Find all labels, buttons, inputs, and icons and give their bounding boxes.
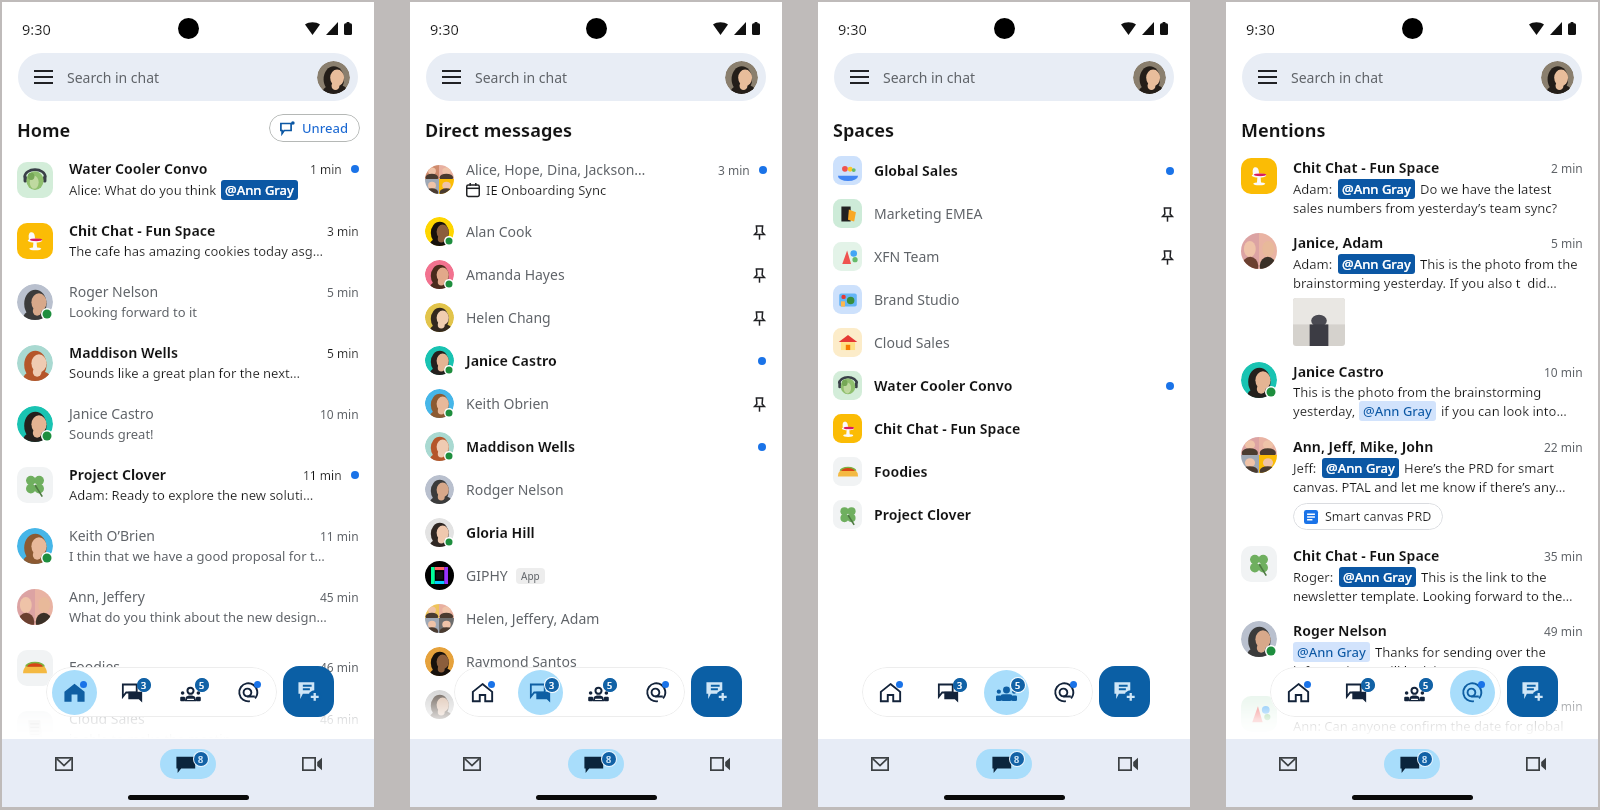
button[interactable]: Chit Chat - Fun Space [818, 407, 1190, 450]
button[interactable]: Meet [658, 739, 782, 789]
button[interactable]: Chat [919, 667, 977, 717]
button[interactable]: Chat [1327, 667, 1385, 717]
button[interactable]: Mail [1226, 739, 1350, 789]
button[interactable]: Smart canvas PRD [1293, 503, 1443, 530]
button[interactable]: Chat [511, 667, 569, 717]
button[interactable]: Janice Castro [410, 339, 782, 382]
button[interactable]: Roger Nelson [2, 271, 374, 332]
button[interactable]: Project Clover [2, 454, 374, 515]
button[interactable]: Mail [2, 739, 126, 789]
button[interactable]: Mentions [1035, 667, 1093, 717]
staticText: XFN Team [1293, 696, 1363, 715]
button[interactable]: New chat [1507, 666, 1558, 717]
button[interactable]: New chat [691, 666, 742, 717]
button[interactable]: Meet [1474, 739, 1598, 789]
button[interactable]: Spaces [977, 667, 1035, 717]
button[interactable]: Search in chat [18, 53, 358, 101]
button[interactable]: Home [1270, 667, 1327, 717]
button[interactable]: Janice Castro [1226, 353, 1598, 428]
button[interactable]: Roger Nelson [1226, 612, 1598, 687]
staticText: Janice, Adam [1293, 233, 1384, 252]
button[interactable]: Search in chat [1242, 53, 1582, 101]
button[interactable]: Rodger Nelson [410, 468, 782, 511]
button[interactable]: GIPHY [410, 554, 782, 597]
button[interactable]: Account [1541, 61, 1574, 94]
button[interactable]: Global Sales [818, 149, 1190, 192]
button[interactable]: Ann, Jeffery [2, 576, 374, 637]
button[interactable]: Project Clover [818, 493, 1190, 536]
button[interactable]: Amanda Hayes [410, 253, 782, 296]
staticText: App [521, 569, 540, 583]
staticText: This is the link to the [1421, 568, 1547, 586]
button[interactable]: Mail [410, 739, 534, 789]
button[interactable]: Spaces [569, 667, 627, 717]
staticText: 3 [1365, 679, 1371, 691]
button[interactable]: Keith Obrien [410, 382, 782, 425]
button[interactable]: Chat [126, 739, 250, 789]
button[interactable]: Keith O’Brien [2, 515, 374, 576]
button[interactable] [410, 683, 782, 726]
button[interactable]: Chit Chat - Fun Space [1226, 149, 1598, 224]
button[interactable]: Meet [1066, 739, 1190, 789]
staticText: I thin that we have a good proposal for … [69, 547, 329, 565]
button[interactable]: Home [454, 667, 511, 717]
button[interactable]: Chit Chat - Fun Space [1226, 537, 1598, 612]
button[interactable]: New chat [1099, 666, 1150, 717]
staticText: Search in chat [67, 68, 160, 87]
button[interactable]: Mail [818, 739, 942, 789]
button[interactable]: Search in chat [834, 53, 1174, 101]
button[interactable]: Search in chat [426, 53, 766, 101]
button[interactable]: Chat [534, 739, 658, 789]
button[interactable]: Home [46, 667, 103, 717]
button[interactable]: Spaces [1385, 667, 1443, 717]
staticText: Keith Obrien [466, 394, 550, 413]
button[interactable]: Maddison Wells [2, 332, 374, 393]
button[interactable]: Mentions [1443, 667, 1501, 717]
staticText: 3 min [718, 162, 750, 178]
staticText: 10 min [1544, 364, 1583, 380]
button[interactable]: Account [725, 61, 758, 94]
button[interactable]: Alice, Hope, Dina, Jackson… [410, 149, 782, 210]
button[interactable]: Account [317, 61, 350, 94]
staticText: Smart canvas PRD [1325, 508, 1432, 525]
button[interactable]: XFN Team [818, 235, 1190, 278]
staticText: Do we have the latest [1420, 180, 1552, 198]
button[interactable]: Home [862, 667, 919, 717]
staticText: 45 min [320, 589, 359, 605]
button[interactable]: Mentions [627, 667, 685, 717]
button[interactable]: Helen, Jeffery, Adam [410, 597, 782, 640]
button[interactable]: Janice Castro [2, 393, 374, 454]
button[interactable]: Foodies [2, 637, 374, 698]
button[interactable]: Chat [1350, 739, 1474, 789]
button[interactable]: Spaces [161, 667, 219, 717]
button[interactable]: Brand Studio [818, 278, 1190, 321]
staticText: Ann: Can anyone confirm the date for glo… [1293, 717, 1564, 735]
button[interactable]: Cloud Sales [2, 698, 374, 759]
button[interactable]: Unread [269, 114, 360, 142]
button[interactable]: Chat [103, 667, 161, 717]
staticText: Sounds great! [69, 425, 329, 443]
button[interactable]: New chat [283, 666, 334, 717]
button[interactable]: Ann, Jeff, Mike, John [1226, 428, 1598, 537]
button[interactable]: Chit Chat - Fun Space [2, 210, 374, 271]
button[interactable]: Gloria Hill [410, 511, 782, 554]
staticText: Maddison Wells [69, 343, 178, 362]
button[interactable]: Meet [250, 739, 374, 789]
button[interactable]: Account [1133, 61, 1166, 94]
button[interactable]: Water Cooler Convo [818, 364, 1190, 407]
button[interactable]: Alan Cook [410, 210, 782, 253]
button[interactable]: Foodies [818, 450, 1190, 493]
button[interactable]: Water Cooler Convo [2, 149, 374, 210]
button[interactable]: Helen Chang [410, 296, 782, 339]
button[interactable]: Chat [942, 739, 1066, 789]
button[interactable]: XFN Team [1226, 687, 1598, 760]
staticText: 8 [198, 753, 204, 765]
button[interactable]: Maddison Wells [410, 425, 782, 468]
staticText: Adam: Ready to explore the new soluti… [69, 486, 329, 504]
button[interactable]: Janice, Adam [1226, 224, 1598, 353]
button[interactable]: Cloud Sales [818, 321, 1190, 364]
staticText: Here’s the PRD for smart [1404, 459, 1554, 477]
button[interactable]: Raymond Santos [410, 640, 782, 683]
button[interactable]: Marketing EMEA [818, 192, 1190, 235]
button[interactable]: Mentions [219, 667, 277, 717]
